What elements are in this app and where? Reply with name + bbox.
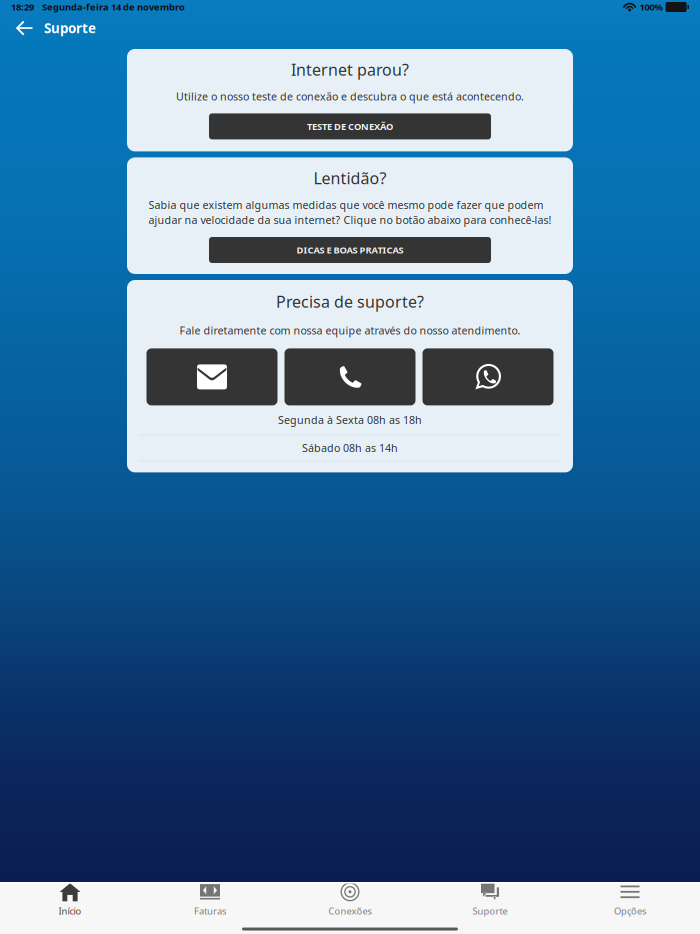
staticText: Opções [614, 905, 646, 917]
staticText: Conexões [328, 905, 371, 917]
staticText: Sabia que existem algumas medidas que vo… [148, 198, 543, 212]
staticText: Suporte [44, 19, 96, 37]
staticText: Internet parou? [291, 59, 409, 80]
staticText: Início [58, 905, 81, 917]
button[interactable]: TESTE DE CONEXÃO [209, 113, 491, 139]
button[interactable]: Conexões [280, 879, 420, 919]
staticText: Precisa de suporte? [276, 291, 424, 312]
staticText: ajudar na velocidade da sua internet? Cl… [148, 213, 551, 227]
staticText: Sábado 08h as 14h [302, 441, 398, 455]
staticText: Suporte [472, 905, 507, 917]
button[interactable]: Opções [560, 879, 700, 919]
staticText: Faturas [194, 905, 226, 917]
button[interactable]: Voltar [7, 15, 41, 41]
staticText: Segunda à Sexta 08h as 18h [278, 413, 422, 427]
staticText: Segunda-feira 14 de novembro [42, 1, 185, 13]
button[interactable]: Início [0, 879, 140, 919]
staticText: DICAS E BOAS PRATICAS [296, 244, 403, 256]
button[interactable]: Suporte [420, 879, 560, 919]
staticText: Fale diretamente com nossa equipe atravé… [179, 323, 520, 337]
staticText: Lentidão? [313, 167, 386, 189]
button[interactable]: Falar pelo WhatsApp [422, 348, 553, 405]
button[interactable]: Ligar por telefone [284, 348, 415, 405]
staticText: 100% [640, 1, 663, 13]
staticText: 18:29 [11, 1, 34, 13]
button[interactable]: Enviar e-mail [146, 348, 277, 405]
button[interactable]: DICAS E BOAS PRATICAS [209, 237, 491, 263]
staticText: Utilize o nosso teste de conexão e descu… [176, 89, 524, 103]
button[interactable]: Faturas [140, 879, 280, 919]
staticText: TESTE DE CONEXÃO [307, 120, 393, 133]
